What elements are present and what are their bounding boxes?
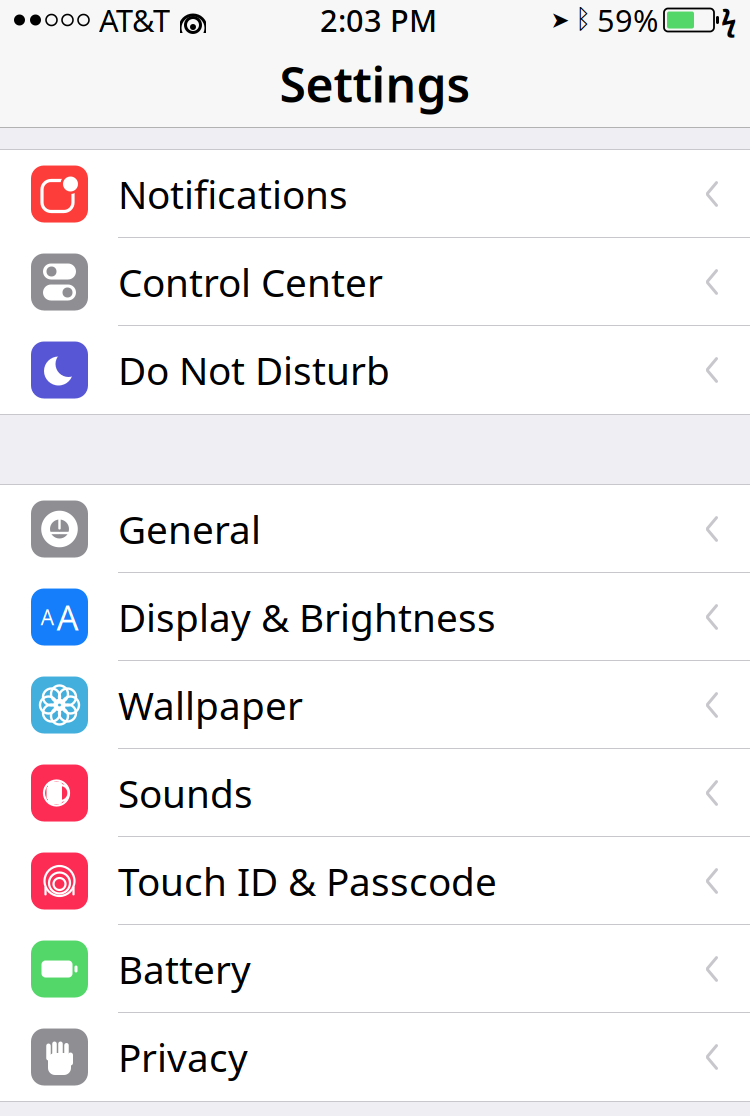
staticText: ➤ bbox=[550, 7, 569, 33]
staticText: Display & Brightness bbox=[118, 591, 496, 643]
staticText: Sounds bbox=[118, 767, 253, 819]
button[interactable]: Sounds bbox=[0, 749, 750, 837]
staticText: Wallpaper bbox=[118, 679, 303, 731]
staticText: ᛒ bbox=[575, 7, 591, 33]
button[interactable]: Notifications bbox=[0, 150, 750, 238]
staticText: A bbox=[56, 594, 78, 640]
button[interactable]: Battery bbox=[0, 925, 750, 1013]
staticText: Control Center bbox=[118, 256, 383, 308]
staticText: A bbox=[40, 603, 54, 631]
staticText: Battery bbox=[118, 943, 251, 995]
staticText: Settings bbox=[279, 52, 470, 116]
staticText: Privacy bbox=[118, 1031, 248, 1083]
button[interactable]: Touch ID & Passcode bbox=[0, 837, 750, 925]
button[interactable]: A bbox=[0, 573, 750, 661]
staticText: AT&T bbox=[99, 0, 170, 40]
button[interactable]: General bbox=[0, 485, 750, 573]
staticText: ϟ bbox=[721, 1, 736, 39]
staticText: Touch ID & Passcode bbox=[118, 855, 497, 907]
button[interactable]: Wallpaper bbox=[0, 661, 750, 749]
staticText: 59% bbox=[597, 0, 658, 40]
button[interactable]: Control Center bbox=[0, 238, 750, 326]
staticText: 2:03 PM bbox=[320, 0, 437, 40]
button[interactable]: Do Not Disturb bbox=[0, 326, 750, 414]
staticText: General bbox=[118, 503, 261, 555]
button[interactable]: Privacy bbox=[0, 1013, 750, 1101]
staticText: Do Not Disturb bbox=[118, 344, 390, 396]
staticText: Notifications bbox=[118, 168, 348, 220]
